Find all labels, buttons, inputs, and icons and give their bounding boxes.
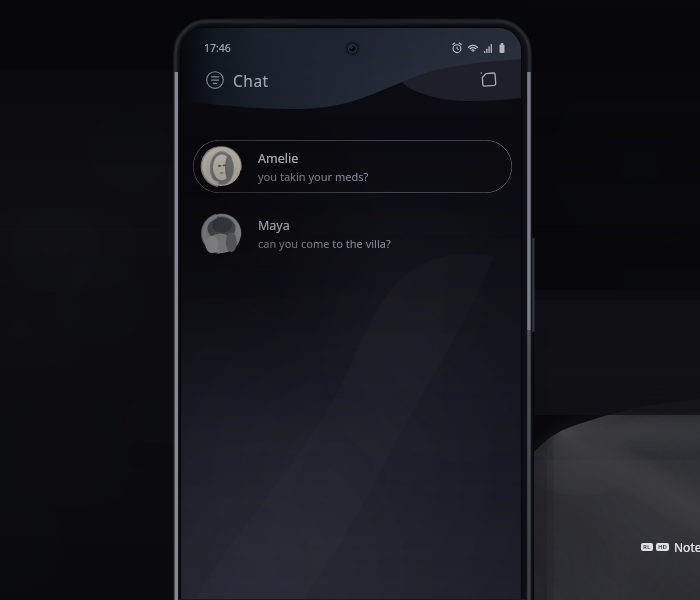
staticText: you takin your meds? <box>258 169 369 184</box>
staticText: RL <box>643 543 651 551</box>
staticText: HD <box>658 543 667 551</box>
staticText: Note <box>674 539 700 555</box>
staticText: can you come to the villa? <box>258 236 391 251</box>
button[interactable]: New chat <box>480 71 498 89</box>
button[interactable]: Amelie <box>193 140 512 193</box>
staticText: Chat <box>233 70 269 91</box>
staticText: Maya <box>258 217 290 234</box>
staticText: 17:46 <box>204 41 231 55</box>
button[interactable]: Maya <box>193 207 512 260</box>
staticText: Amelie <box>258 150 299 167</box>
button[interactable]: Menu <box>206 71 224 89</box>
